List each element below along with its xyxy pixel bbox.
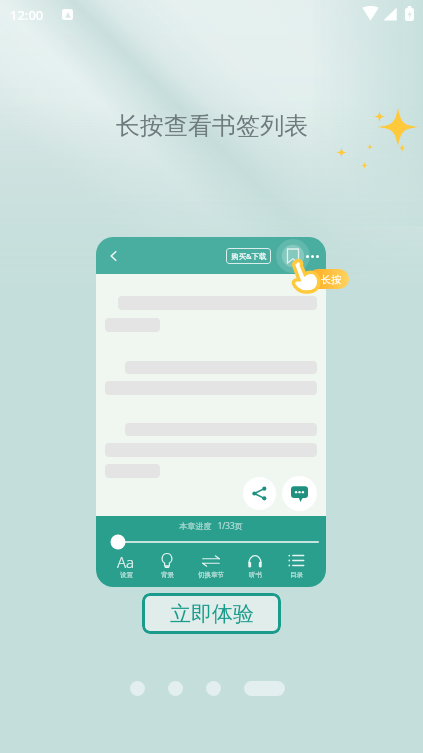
staticText: 长按查看书签列表: [116, 111, 308, 141]
staticText: 立即体验: [170, 601, 254, 627]
button[interactable]: Back: [107, 249, 121, 263]
staticText: 听书: [249, 571, 262, 579]
staticText: 购买&下载: [231, 251, 267, 261]
button[interactable]: 切换章节: [197, 552, 225, 579]
staticText: 目录: [290, 571, 303, 579]
staticText: 本章进度 1/33页: [96, 520, 326, 531]
staticText: 12:00: [10, 6, 44, 24]
button[interactable]: 目录: [284, 552, 308, 579]
staticText: 设置: [120, 571, 133, 579]
button[interactable]: Aa: [114, 552, 138, 579]
button[interactable]: 背景: [155, 552, 179, 579]
button[interactable]: More options: [302, 246, 322, 266]
button[interactable]: 长按: [308, 269, 349, 289]
button[interactable]: Bookmark: [282, 245, 304, 267]
staticText: 背景: [161, 571, 174, 579]
staticText: 切换章节: [198, 571, 224, 579]
button[interactable]: 立即体验: [142, 593, 281, 634]
button[interactable]: 购买&下载: [226, 248, 271, 264]
staticText: Aa: [117, 552, 135, 569]
staticText: 长按: [321, 273, 341, 286]
button[interactable]: Comments: [282, 476, 317, 511]
button[interactable]: Share: [243, 477, 276, 510]
button[interactable]: 听书: [243, 552, 267, 579]
button[interactable]: Chapter progress: [96, 534, 326, 550]
